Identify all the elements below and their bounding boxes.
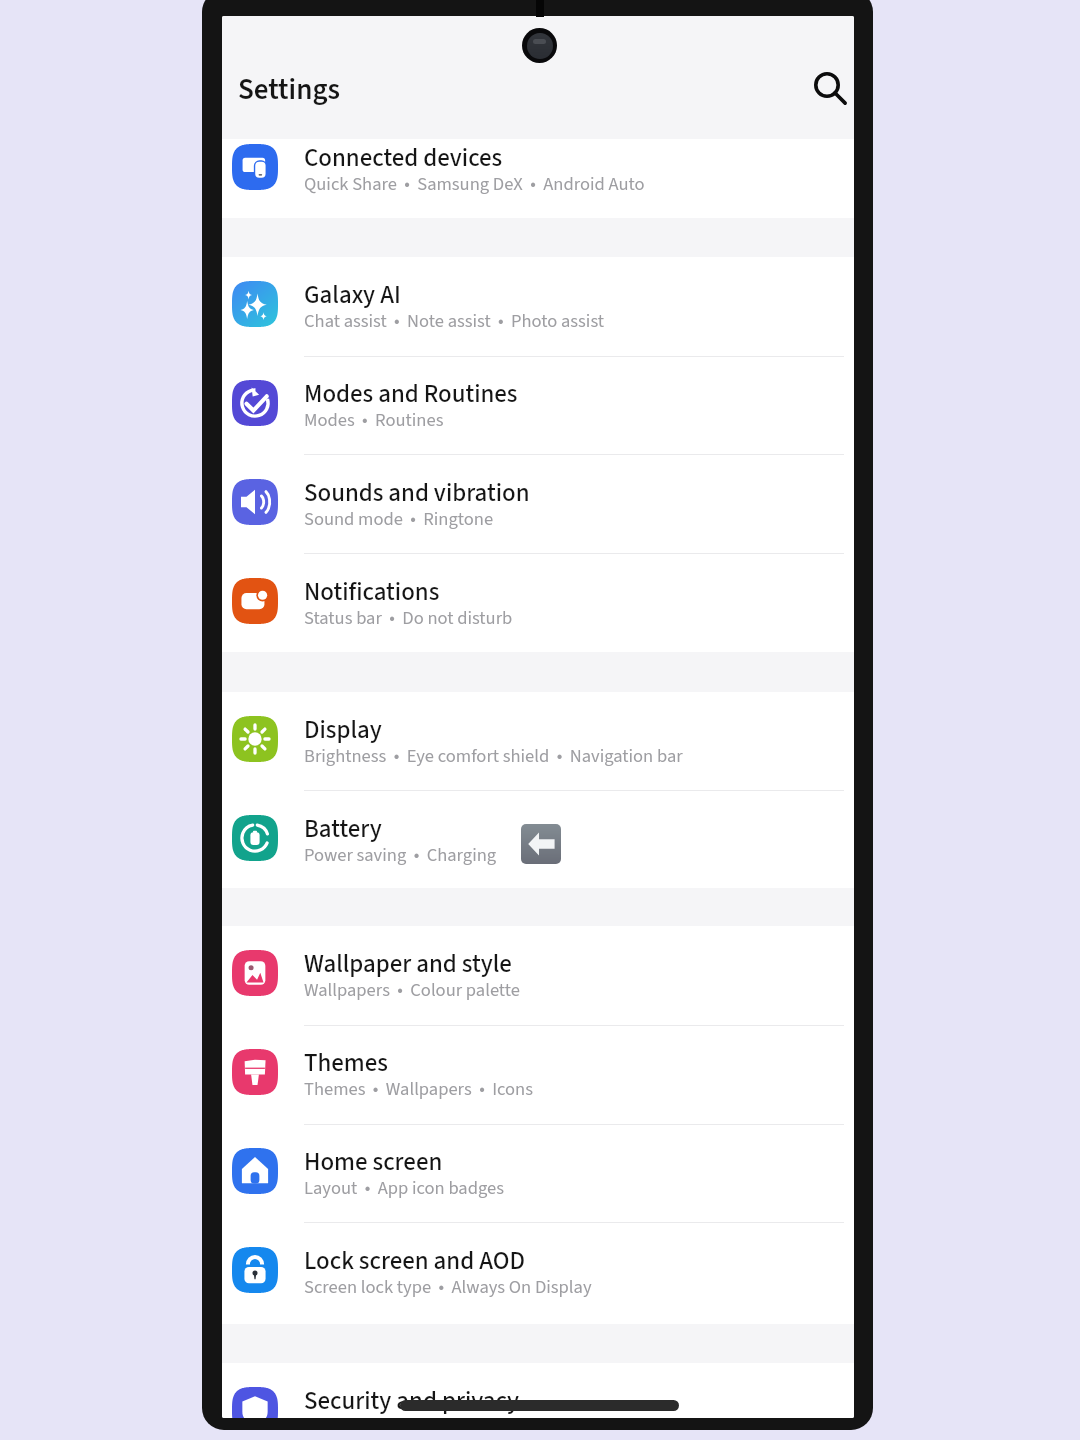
staticText: Battery <box>304 811 382 847</box>
staticText: Settings <box>238 69 340 110</box>
button[interactable]: Galaxy AI <box>222 257 854 356</box>
button[interactable]: Lock screen and AOD <box>222 1223 854 1322</box>
button[interactable]: Security and privacy <box>222 1363 854 1418</box>
staticText: Galaxy AI <box>304 277 401 313</box>
staticText: Modes and Routines <box>304 376 518 412</box>
staticText: Brightness • Eye comfort shield • Naviga… <box>304 743 683 769</box>
button[interactable]: Home screen <box>222 1124 854 1223</box>
staticText: Themes • Wallpapers • Icons <box>304 1076 533 1102</box>
button[interactable]: Notifications <box>222 554 854 653</box>
staticText: Display <box>304 712 382 748</box>
button[interactable]: Battery <box>222 791 854 890</box>
staticText: Sound mode • Ringtone <box>304 506 494 532</box>
staticText: Themes <box>304 1045 388 1081</box>
staticText: Power saving • Charging <box>304 842 497 868</box>
staticText: Layout • App icon badges <box>304 1175 504 1201</box>
button[interactable]: Display <box>222 692 854 791</box>
staticText: Chat assist • Note assist • Photo assist <box>304 308 605 334</box>
button[interactable]: Wallpaper and style <box>222 926 854 1025</box>
button[interactable]: Search <box>802 60 852 110</box>
staticText: Quick Share • Samsung DeX • Android Auto <box>304 171 645 197</box>
staticText: Lock screen and AOD <box>304 1243 525 1279</box>
staticText: Notifications <box>304 574 440 610</box>
staticText: Sounds and vibration <box>304 475 530 511</box>
button[interactable]: Connected devices <box>222 120 854 219</box>
staticText: Modes • Routines <box>304 407 444 433</box>
staticText: Status bar • Do not disturb <box>304 605 513 631</box>
staticText: Security and privacy <box>304 1383 520 1418</box>
staticText: Home screen <box>304 1144 443 1180</box>
staticText: Connected devices <box>304 140 503 176</box>
button[interactable]: Sounds and vibration <box>222 455 854 554</box>
button[interactable]: Themes <box>222 1025 854 1124</box>
staticText: Wallpapers • Colour palette <box>304 977 520 1003</box>
button[interactable]: Modes and Routines <box>222 356 854 455</box>
staticText: Wallpaper and style <box>304 946 512 982</box>
other: Back <box>521 824 561 864</box>
staticText: Screen lock type • Always On Display <box>304 1274 592 1300</box>
